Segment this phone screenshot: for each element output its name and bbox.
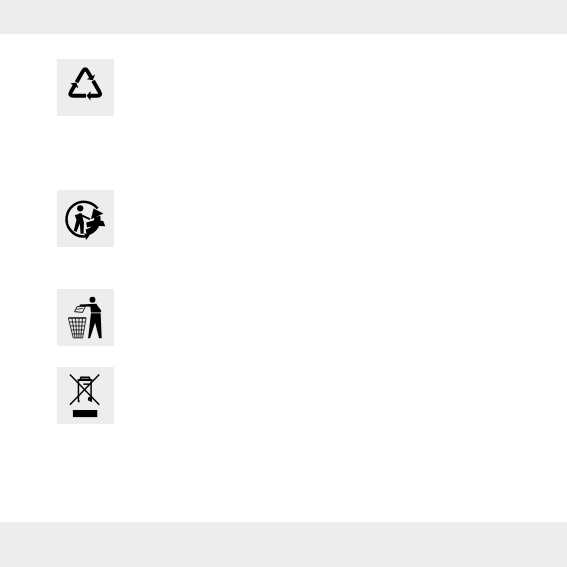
button[interactable]: WEEE disposal symbol <box>57 367 114 424</box>
button[interactable]: Recycling symbol <box>57 59 114 116</box>
button[interactable]: Triman sorting symbol <box>57 190 114 247</box>
button[interactable]: Tidyman symbol <box>57 289 114 346</box>
